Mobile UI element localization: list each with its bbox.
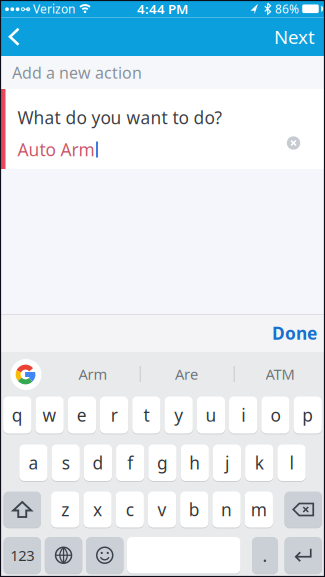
- button[interactable]: d: [84, 444, 112, 481]
- staticText: Auto Arm: [17, 138, 94, 161]
- button[interactable]: Done: [272, 321, 325, 344]
- button[interactable]: u: [197, 396, 225, 433]
- button[interactable]: g: [148, 444, 177, 481]
- staticText: Are: [175, 364, 198, 384]
- staticText: a: [28, 451, 38, 474]
- staticText: Next: [274, 24, 315, 49]
- staticText: o: [270, 403, 280, 426]
- button[interactable]: j: [213, 444, 241, 481]
- button[interactable]: c: [116, 491, 144, 527]
- staticText: p: [302, 403, 313, 426]
- staticText: h: [189, 451, 200, 474]
- staticText: 123: [10, 545, 34, 565]
- button[interactable]: [3, 491, 41, 527]
- button[interactable]: [286, 136, 300, 150]
- staticText: d: [92, 451, 103, 474]
- button[interactable]: [86, 537, 123, 573]
- button[interactable]: s: [52, 444, 80, 481]
- button[interactable]: [45, 537, 82, 573]
- staticText: Verizon: [33, 1, 75, 17]
- staticText: .: [262, 544, 267, 567]
- button[interactable]: [10, 359, 41, 390]
- button[interactable]: y: [164, 396, 193, 433]
- button[interactable]: m: [245, 491, 273, 527]
- button[interactable]: z: [51, 491, 79, 527]
- staticText: k: [255, 451, 264, 474]
- button[interactable]: o: [261, 396, 290, 433]
- button[interactable]: t: [132, 396, 160, 433]
- staticText: c: [126, 498, 134, 521]
- staticText: m: [251, 498, 267, 521]
- staticText: ATM: [265, 364, 294, 384]
- button[interactable]: b: [180, 491, 208, 527]
- button[interactable]: [127, 537, 240, 573]
- staticText: t: [143, 403, 149, 426]
- button[interactable]: e: [68, 396, 96, 433]
- button[interactable]: Arm: [53, 359, 133, 389]
- staticText: Done: [272, 321, 317, 344]
- button[interactable]: i: [229, 396, 257, 433]
- button[interactable]: [284, 537, 322, 573]
- button[interactable]: x: [83, 491, 112, 527]
- staticText: r: [111, 403, 118, 426]
- staticText: v: [157, 498, 166, 521]
- button[interactable]: h: [181, 444, 209, 481]
- staticText: e: [77, 403, 87, 426]
- staticText: q: [12, 403, 23, 426]
- staticText: s: [62, 451, 70, 474]
- staticText: 4:44 PM: [137, 0, 188, 18]
- staticText: b: [189, 498, 200, 521]
- button[interactable]: [284, 491, 322, 527]
- button[interactable]: p: [293, 396, 322, 433]
- button[interactable]: [5, 25, 29, 49]
- staticText: j: [225, 451, 229, 474]
- staticText: Add a new action: [12, 62, 142, 83]
- button[interactable]: w: [35, 396, 64, 433]
- staticText: f: [127, 451, 133, 474]
- button[interactable]: f: [116, 444, 144, 481]
- staticText: g: [157, 451, 168, 474]
- button[interactable]: .: [252, 537, 278, 573]
- staticText: 86%: [275, 1, 299, 17]
- staticText: Arm: [78, 364, 107, 384]
- button[interactable]: q: [3, 396, 31, 433]
- button[interactable]: Are: [146, 359, 226, 389]
- button[interactable]: v: [148, 491, 176, 527]
- staticText: l: [289, 451, 293, 474]
- button[interactable]: l: [277, 444, 306, 481]
- button[interactable]: a: [19, 444, 48, 481]
- staticText: x: [93, 498, 102, 521]
- staticText: y: [174, 403, 183, 426]
- button[interactable]: n: [212, 491, 241, 527]
- staticText: n: [221, 498, 232, 521]
- button[interactable]: k: [245, 444, 273, 481]
- staticText: i: [241, 403, 245, 426]
- button[interactable]: Next: [274, 24, 325, 49]
- button[interactable]: 123: [3, 537, 41, 573]
- staticText: What do you want to do?: [17, 106, 222, 129]
- staticText: w: [43, 403, 57, 426]
- staticText: z: [61, 498, 69, 521]
- button[interactable]: ATM: [240, 359, 320, 389]
- staticText: u: [205, 403, 216, 426]
- button[interactable]: r: [100, 396, 128, 433]
